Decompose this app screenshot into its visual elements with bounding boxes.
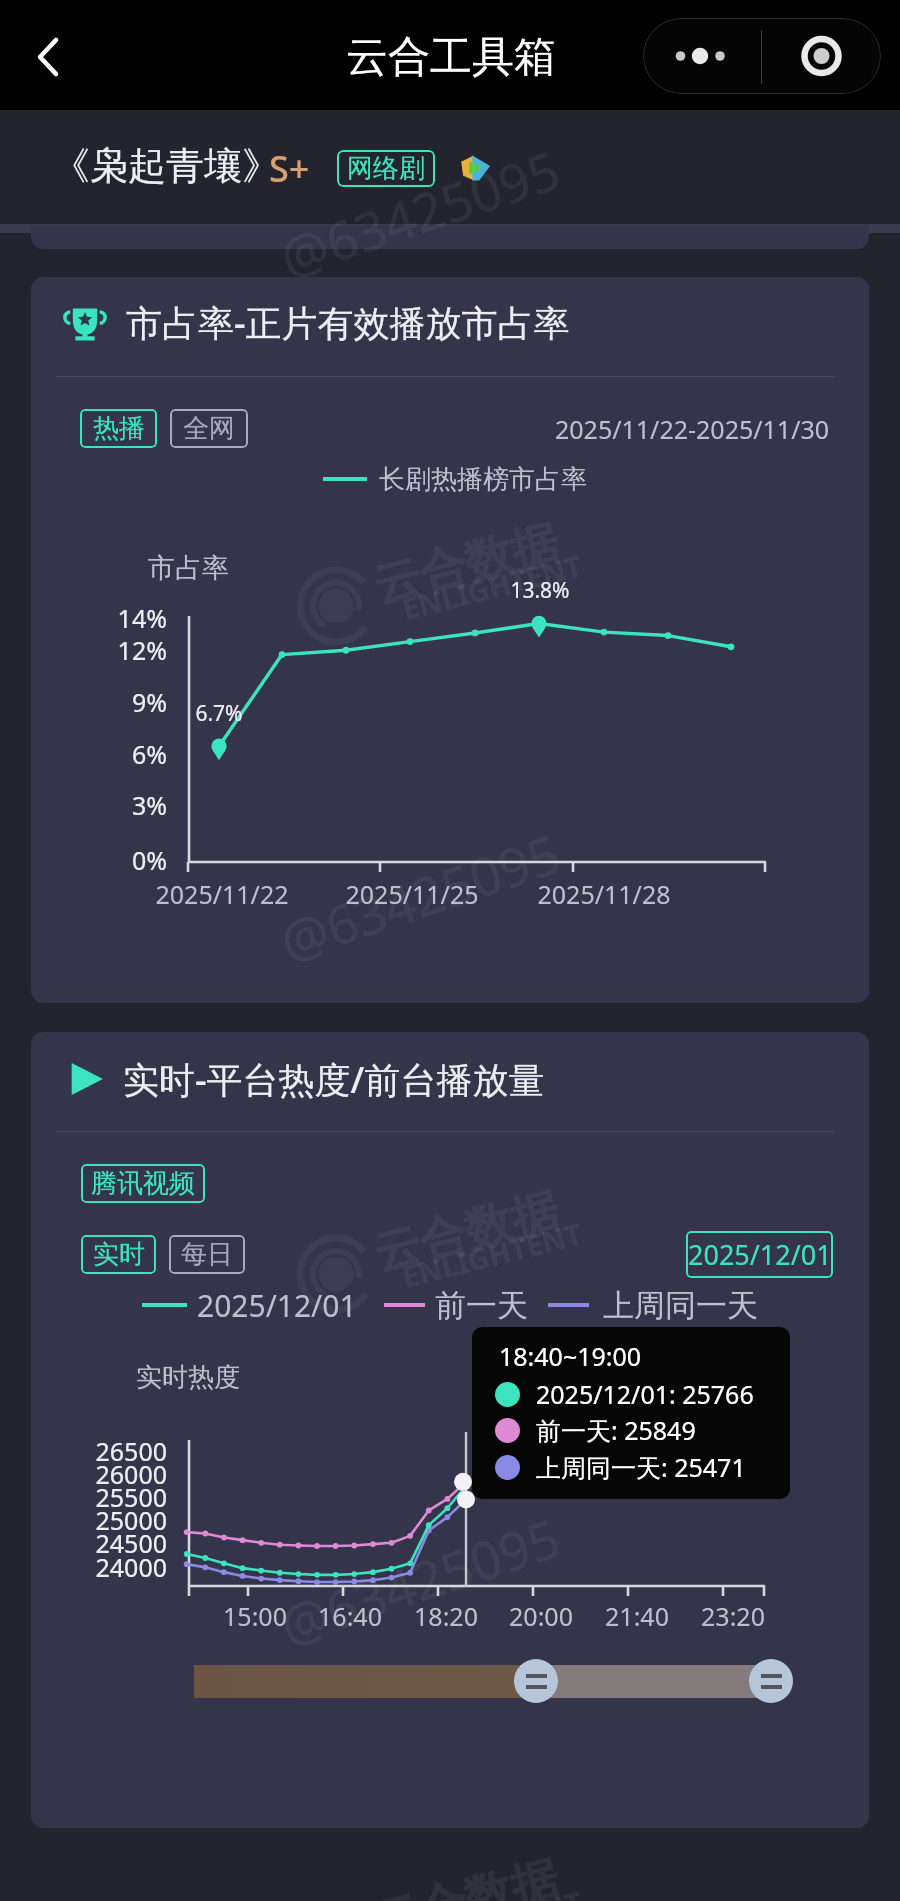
staticText: 上周同一天 <box>603 1286 758 1325</box>
button[interactable]: 实时 <box>81 1235 156 1274</box>
staticText: 3% <box>131 788 167 822</box>
staticText: 2025/11/25 <box>345 877 479 911</box>
staticText: 云合数据 <box>368 1849 564 1901</box>
staticText: 24000 <box>95 1550 167 1584</box>
staticText: 实时-平台热度/前台播放量 <box>123 1055 545 1104</box>
staticText: @63425095 <box>270 816 568 973</box>
staticText: 网络剧 <box>347 152 425 185</box>
staticText: 2025/11/28 <box>537 877 671 911</box>
staticText: 6% <box>131 737 167 771</box>
staticText: 2025/12/01: 25766 <box>536 1377 754 1411</box>
staticText: 云合数据 <box>368 1181 564 1284</box>
staticText: @63425095 <box>270 1500 568 1657</box>
staticText: 实时 <box>93 1238 145 1271</box>
staticText: 18:40~19:00 <box>499 1339 642 1373</box>
button[interactable] <box>31 277 869 1003</box>
staticText: 前一天 <box>435 1286 528 1325</box>
staticText: 24500 <box>95 1526 167 1560</box>
staticText: 25500 <box>95 1480 167 1514</box>
button[interactable]: 2025/12/01 <box>686 1231 833 1278</box>
staticText: 云合工具箱 <box>346 31 556 84</box>
staticText: 2025/12/01 <box>688 1236 832 1273</box>
staticText: 18:20 <box>414 1599 478 1633</box>
staticText: 2025/11/22 <box>155 877 289 911</box>
staticText: ENLIGHTENT <box>398 1213 586 1296</box>
staticText: 6.7% <box>195 699 243 728</box>
staticText: @63425095 <box>270 132 568 289</box>
staticText: 每日 <box>181 1238 233 1271</box>
button[interactable]: Close mini program <box>762 18 881 94</box>
staticText: 25000 <box>95 1503 167 1537</box>
staticText: 腾讯视频 <box>91 1167 195 1200</box>
staticText: 上周同一天: 25471 <box>536 1450 746 1484</box>
button[interactable]: 网络剧 <box>337 150 435 187</box>
button[interactable]: 腾讯视频 <box>81 1164 205 1203</box>
staticText: 全网 <box>183 412 235 445</box>
button[interactable] <box>31 1032 869 1828</box>
button[interactable]: 热播 <box>80 409 157 448</box>
staticText: 20:00 <box>509 1599 573 1633</box>
staticText: 26000 <box>95 1457 167 1491</box>
button[interactable]: 全网 <box>170 409 248 448</box>
button[interactable]: Range handle <box>514 1659 558 1703</box>
staticText: 《枭起青壤》 <box>52 142 280 190</box>
staticText: 前一天: 25849 <box>536 1413 696 1447</box>
staticText: 9% <box>131 685 167 719</box>
staticText: 13.8% <box>510 576 570 605</box>
staticText: 热播 <box>93 412 145 445</box>
button[interactable]: More options <box>643 18 762 94</box>
staticText: 21:40 <box>605 1599 669 1633</box>
staticText: 0% <box>131 843 167 877</box>
staticText: 市占率-正片有效播放市占率 <box>126 298 570 347</box>
staticText: 12% <box>117 633 167 667</box>
button[interactable]: Back <box>20 20 76 76</box>
staticText: 16:40 <box>318 1599 382 1633</box>
staticText: 2025/12/01 <box>197 1285 357 1326</box>
staticText: 23:20 <box>701 1599 765 1633</box>
button[interactable]: Tencent Video <box>460 155 491 181</box>
staticText: 实时热度 <box>136 1361 240 1394</box>
staticText: 市占率 <box>148 551 229 585</box>
button[interactable]: 每日 <box>169 1235 245 1274</box>
staticText: 长剧热播榜市占率 <box>379 463 587 496</box>
button[interactable]: Range handle <box>749 1659 793 1703</box>
staticText: ENLIGHTENT <box>398 545 586 628</box>
staticText: ENLIGHTENT <box>398 1881 586 1901</box>
staticText: S+ <box>269 144 310 193</box>
staticText: 15:00 <box>223 1599 287 1633</box>
staticText: 14% <box>117 601 167 635</box>
staticText: 26500 <box>95 1434 167 1468</box>
staticText: 2025/11/22-2025/11/30 <box>555 412 830 446</box>
staticText: 云合数据 <box>368 513 564 616</box>
